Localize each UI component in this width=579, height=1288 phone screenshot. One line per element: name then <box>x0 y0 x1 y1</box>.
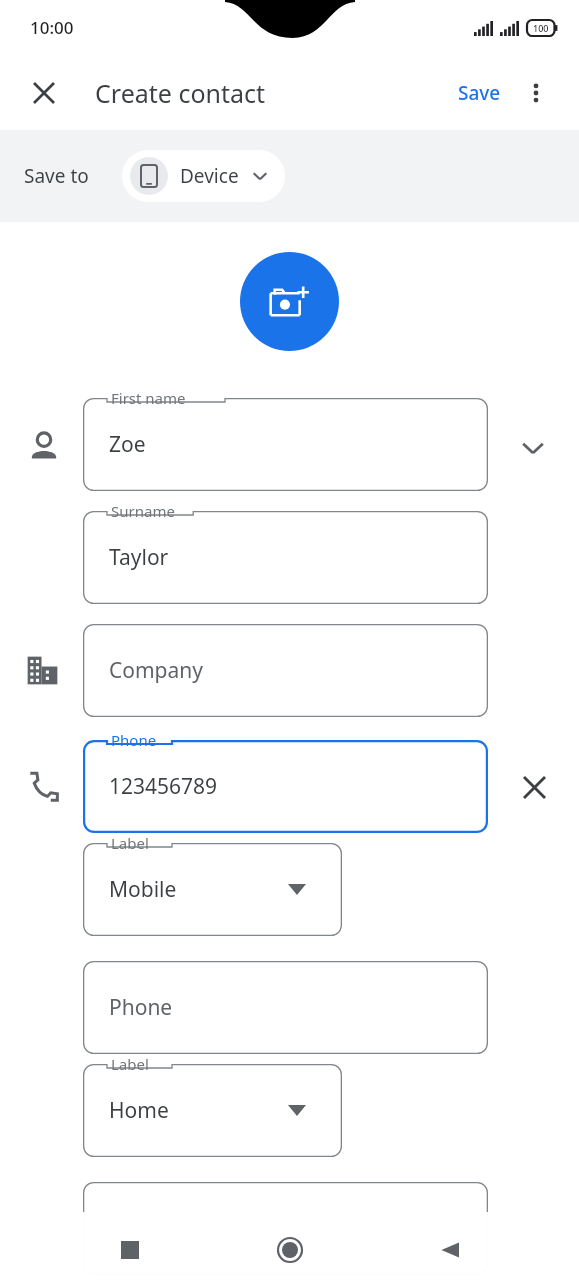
button[interactable]: Recent apps <box>101 1221 159 1279</box>
button[interactable]: Label <box>83 843 342 936</box>
staticText: 123456789 <box>109 772 218 801</box>
button[interactable]: First name <box>83 398 488 491</box>
staticText: 10:00 <box>30 16 74 39</box>
staticText: Zoe <box>109 430 146 459</box>
button[interactable] <box>83 1182 488 1275</box>
staticText: Home <box>109 1096 169 1125</box>
button[interactable]: Add photo <box>240 252 339 351</box>
staticText: First name <box>111 388 186 408</box>
button[interactable]: More options <box>511 68 561 118</box>
staticText: Save to <box>24 163 89 189</box>
button[interactable]: Expand name fields <box>511 426 555 470</box>
button[interactable]: Home <box>261 1221 319 1279</box>
staticText: Label <box>111 833 149 853</box>
button[interactable]: Company <box>83 624 488 717</box>
button[interactable]: Back <box>420 1221 478 1279</box>
staticText: Surname <box>111 501 175 521</box>
staticText: 100 <box>533 22 549 34</box>
staticText: Phone <box>111 730 157 750</box>
button[interactable]: Device <box>122 150 285 202</box>
button[interactable]: Phone <box>83 961 488 1054</box>
button[interactable]: Phone <box>83 740 488 833</box>
staticText: Save <box>458 80 501 106</box>
button[interactable]: Label <box>83 1064 342 1157</box>
staticText: Taylor <box>109 543 169 572</box>
staticText: Device <box>180 163 239 189</box>
staticText: Company <box>109 656 203 685</box>
button[interactable]: Close <box>16 65 72 121</box>
button[interactable]: Clear phone number <box>511 764 557 810</box>
button[interactable]: Save <box>452 74 507 112</box>
staticText: Mobile <box>109 875 177 904</box>
staticText: Phone <box>109 993 173 1022</box>
staticText: Create contact <box>95 76 266 110</box>
staticText: Label <box>111 1054 149 1074</box>
button[interactable]: Surname <box>83 511 488 604</box>
